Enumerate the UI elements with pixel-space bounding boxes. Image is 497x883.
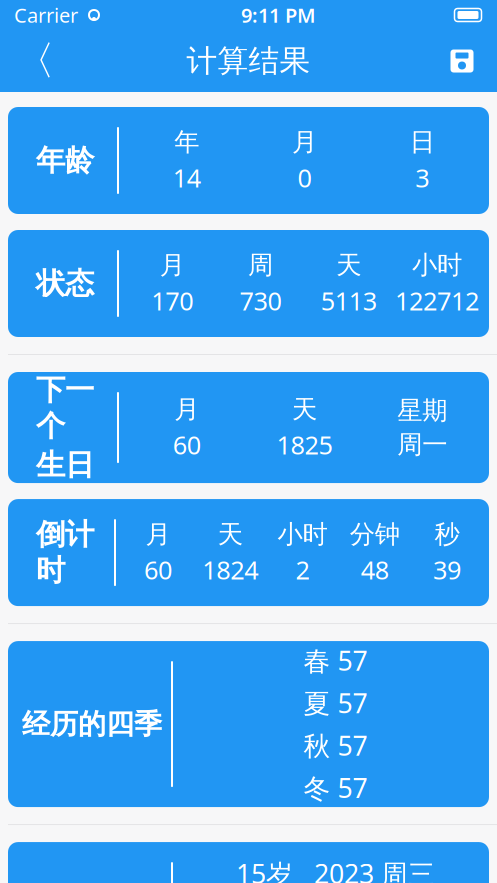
staticText: 生日 bbox=[36, 447, 94, 483]
staticText: 60 bbox=[173, 428, 201, 461]
staticText: 〈 bbox=[15, 36, 55, 85]
staticText: 0 bbox=[297, 161, 311, 194]
staticText: 经历的四季 bbox=[22, 707, 162, 741]
staticText: 48 bbox=[361, 553, 389, 586]
staticText: 60 bbox=[144, 553, 172, 586]
staticText: 天 bbox=[336, 250, 361, 281]
button[interactable]: 经历的四季 bbox=[0, 641, 497, 807]
staticText: 730 bbox=[239, 284, 281, 317]
staticText: 日 bbox=[410, 127, 435, 158]
staticText: 月 bbox=[146, 519, 171, 550]
staticText: 年龄 bbox=[36, 142, 94, 178]
staticText: 秋 57 bbox=[303, 728, 367, 763]
staticText: 天 bbox=[218, 519, 243, 550]
staticText: 170 bbox=[151, 284, 193, 317]
staticText: 小时 bbox=[277, 519, 327, 550]
staticText: Carrier bbox=[14, 2, 78, 28]
staticText: 计算结果 bbox=[186, 42, 310, 80]
staticText: 年 bbox=[174, 127, 199, 158]
staticText: 倒计时 bbox=[36, 517, 94, 589]
button[interactable]: Save bbox=[435, 33, 489, 89]
staticText: 下一个 bbox=[36, 372, 94, 444]
staticText: 状态 bbox=[36, 265, 94, 301]
staticText: 3 bbox=[415, 161, 429, 194]
button[interactable] bbox=[0, 842, 497, 883]
staticText: 周 bbox=[248, 250, 273, 281]
button[interactable]: Back bbox=[8, 33, 62, 89]
staticText: 冬 57 bbox=[303, 770, 367, 805]
staticText: 5113 bbox=[321, 284, 377, 317]
staticText: 15岁 2023 周三 bbox=[236, 856, 435, 883]
staticText: 月 bbox=[174, 394, 199, 425]
button[interactable]: 状态 bbox=[0, 230, 497, 337]
staticText: 14 bbox=[173, 161, 201, 194]
button[interactable]: 年龄 bbox=[0, 107, 497, 214]
staticText: 9:11 PM bbox=[241, 2, 316, 28]
staticText: 秒 bbox=[434, 519, 459, 550]
staticText: 春 57 bbox=[303, 643, 367, 678]
staticText: 小时 bbox=[412, 250, 462, 281]
staticText: 周一 bbox=[397, 429, 447, 460]
staticText: 夏 57 bbox=[303, 685, 367, 721]
staticText: 1824 bbox=[202, 553, 258, 586]
staticText: 1825 bbox=[276, 428, 332, 461]
staticText: 分钟 bbox=[350, 519, 400, 550]
staticText: 122712 bbox=[395, 284, 479, 317]
button[interactable]: 下一个 bbox=[0, 372, 497, 483]
staticText: 39 bbox=[433, 553, 461, 586]
staticText: 月 bbox=[292, 127, 317, 158]
button[interactable]: 倒计时 bbox=[0, 499, 497, 606]
staticText: 月 bbox=[160, 250, 185, 281]
staticText: 星期 bbox=[397, 395, 447, 426]
staticText: 天 bbox=[292, 394, 317, 425]
staticText: 2 bbox=[295, 553, 309, 586]
